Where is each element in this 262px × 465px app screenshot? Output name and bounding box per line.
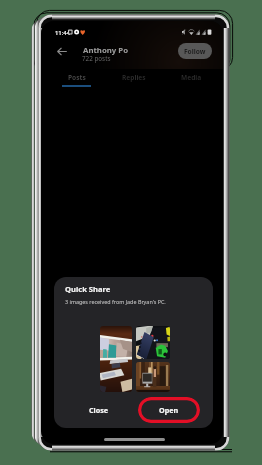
staticText: 3 images received from Jade Bryan's PC. xyxy=(65,298,166,305)
staticText: Media xyxy=(181,73,202,82)
button[interactable]: Close xyxy=(71,397,127,423)
staticText: 11:44 xyxy=(55,29,71,37)
staticText: Follow xyxy=(184,47,206,56)
button[interactable]: Follow xyxy=(178,43,212,59)
staticText: Close xyxy=(89,405,109,415)
staticText: Open xyxy=(159,405,179,415)
staticText: Anthony Po xyxy=(83,45,129,56)
button[interactable]: Open xyxy=(138,397,200,423)
button[interactable]: Replies xyxy=(105,66,162,89)
staticText: Replies xyxy=(122,73,146,82)
staticText: Posts xyxy=(68,73,86,82)
button[interactable]: Posts xyxy=(48,66,105,89)
button[interactable]: Back xyxy=(54,43,70,59)
button[interactable]: Media xyxy=(163,66,220,89)
staticText: Quick Share xyxy=(65,284,111,294)
staticText: 722 posts xyxy=(82,54,111,63)
